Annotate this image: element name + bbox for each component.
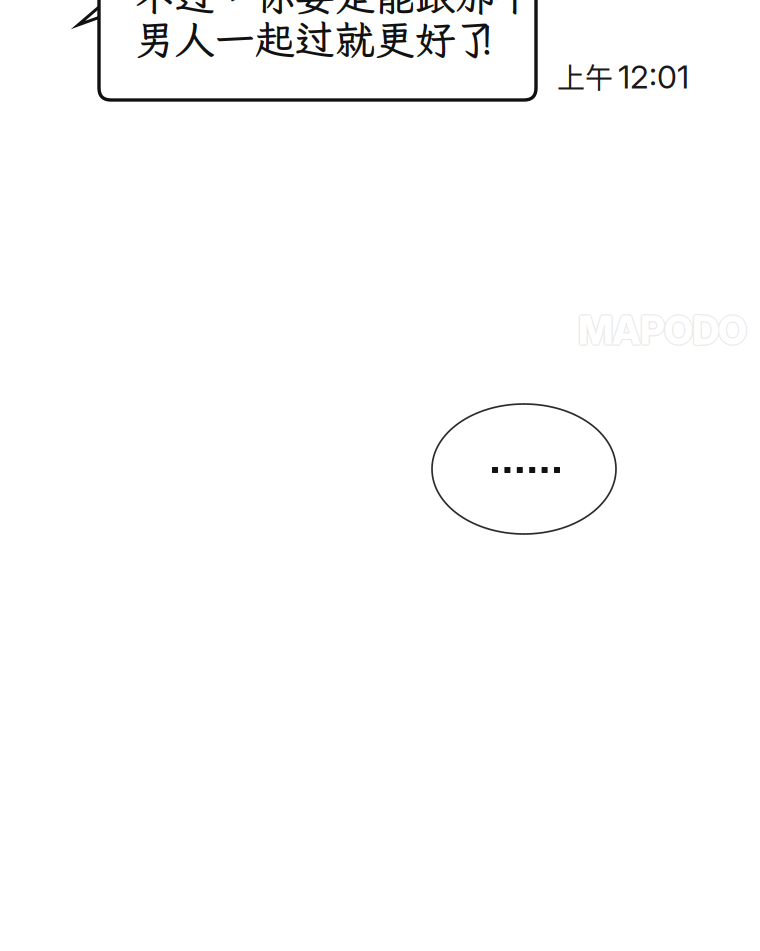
staticText: 12:01: [618, 57, 689, 96]
staticText: 不过，你要是能跟那个: [135, 0, 535, 22]
staticText: MAPODO: [578, 307, 747, 354]
staticText: MAPODO: [579, 307, 748, 354]
staticText: MAPODO: [578, 308, 747, 355]
staticText: ！: [467, 13, 507, 65]
button[interactable]: 漫画页面: [0, 0, 760, 951]
staticText: 男人一起过就更好了: [135, 13, 495, 65]
staticText: MAPODO: [578, 306, 747, 353]
staticText: 上午: [557, 56, 613, 96]
staticText: MAPODO: [577, 307, 746, 354]
